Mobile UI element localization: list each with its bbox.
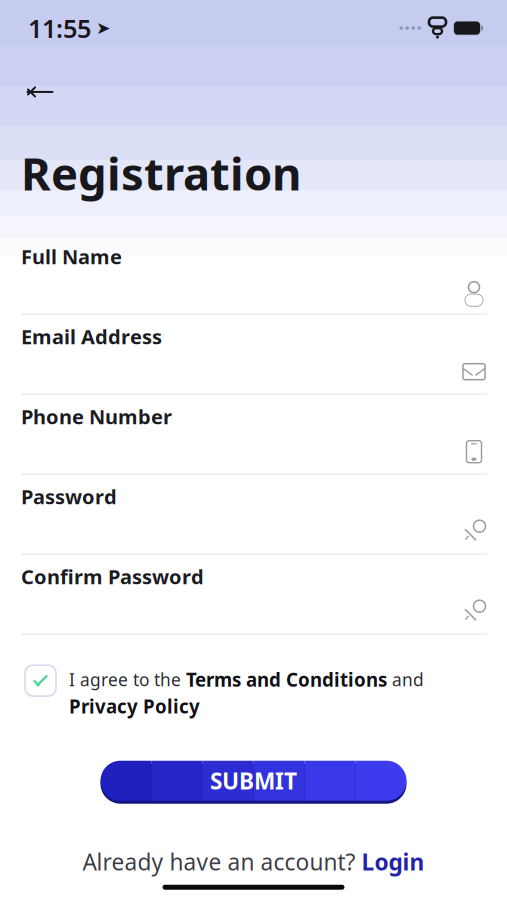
staticText: Terms and Conditions	[186, 667, 387, 692]
staticText: I agree to the	[69, 668, 186, 691]
staticText: Login	[361, 847, 424, 877]
button[interactable]: Back	[12, 69, 68, 115]
staticText: Email Address	[21, 323, 162, 350]
staticText: ➤	[96, 18, 111, 38]
staticText: SUBMIT	[210, 766, 297, 796]
button[interactable]: SUBMIT	[0, 757, 507, 805]
staticText: Privacy Policy	[69, 694, 200, 719]
button[interactable]: Already have an account?	[0, 847, 507, 877]
staticText: and	[387, 668, 424, 691]
staticText: Full Name	[21, 243, 122, 270]
staticText: Confirm Password	[21, 563, 204, 590]
staticText: Already have an account?	[82, 847, 355, 877]
staticText: 11:55	[28, 11, 91, 45]
staticText: Registration	[21, 143, 301, 203]
button[interactable]: I agree to the	[0, 665, 507, 719]
staticText: Password	[21, 483, 117, 510]
staticText: Phone Number	[21, 403, 172, 430]
